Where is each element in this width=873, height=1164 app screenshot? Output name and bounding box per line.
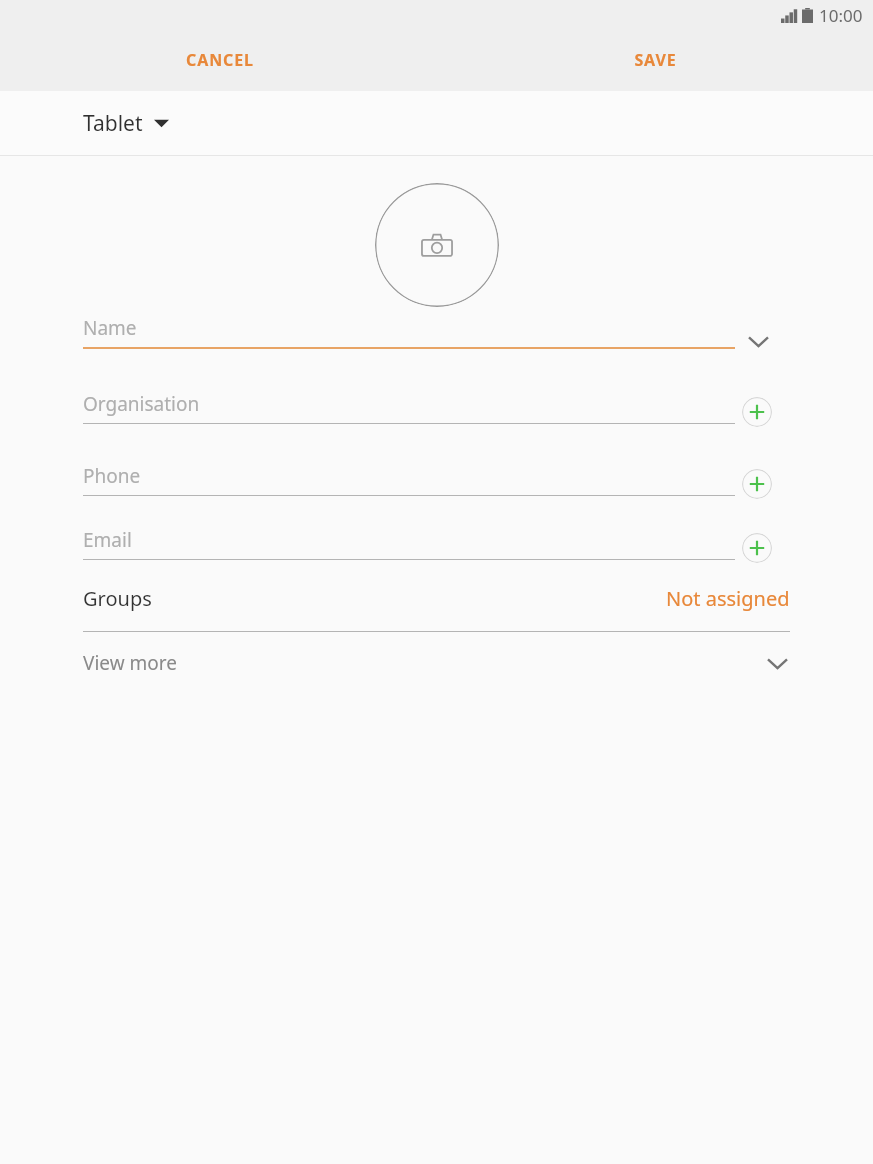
staticText: 10:00 xyxy=(819,4,863,27)
button[interactable]: SAVE xyxy=(586,40,725,80)
staticText: Not assigned xyxy=(666,585,790,612)
button[interactable]: Add email xyxy=(742,533,772,563)
staticText: Email xyxy=(83,527,132,553)
button[interactable]: Add phone xyxy=(742,469,772,499)
staticText: SAVE xyxy=(634,49,677,71)
staticText: Organisation xyxy=(83,391,200,417)
staticText: Phone xyxy=(83,463,141,489)
button[interactable]: Add organisation xyxy=(742,397,772,427)
staticText: CANCEL xyxy=(186,49,254,71)
button[interactable]: Organisation xyxy=(83,389,735,441)
button[interactable]: Phone xyxy=(83,461,735,513)
button[interactable]: View more xyxy=(83,634,790,692)
staticText: Tablet xyxy=(83,109,143,138)
button[interactable]: CANCEL xyxy=(150,40,289,80)
button[interactable]: Add photo xyxy=(375,183,499,307)
button[interactable]: Groups xyxy=(83,575,790,632)
staticText: Name xyxy=(83,315,137,341)
button[interactable]: Tablet xyxy=(83,99,169,147)
staticText: View more xyxy=(83,650,177,676)
staticText: Groups xyxy=(83,585,152,612)
button[interactable]: Name xyxy=(83,313,735,365)
button[interactable]: Email xyxy=(83,525,735,577)
button[interactable]: Expand name xyxy=(741,324,775,358)
